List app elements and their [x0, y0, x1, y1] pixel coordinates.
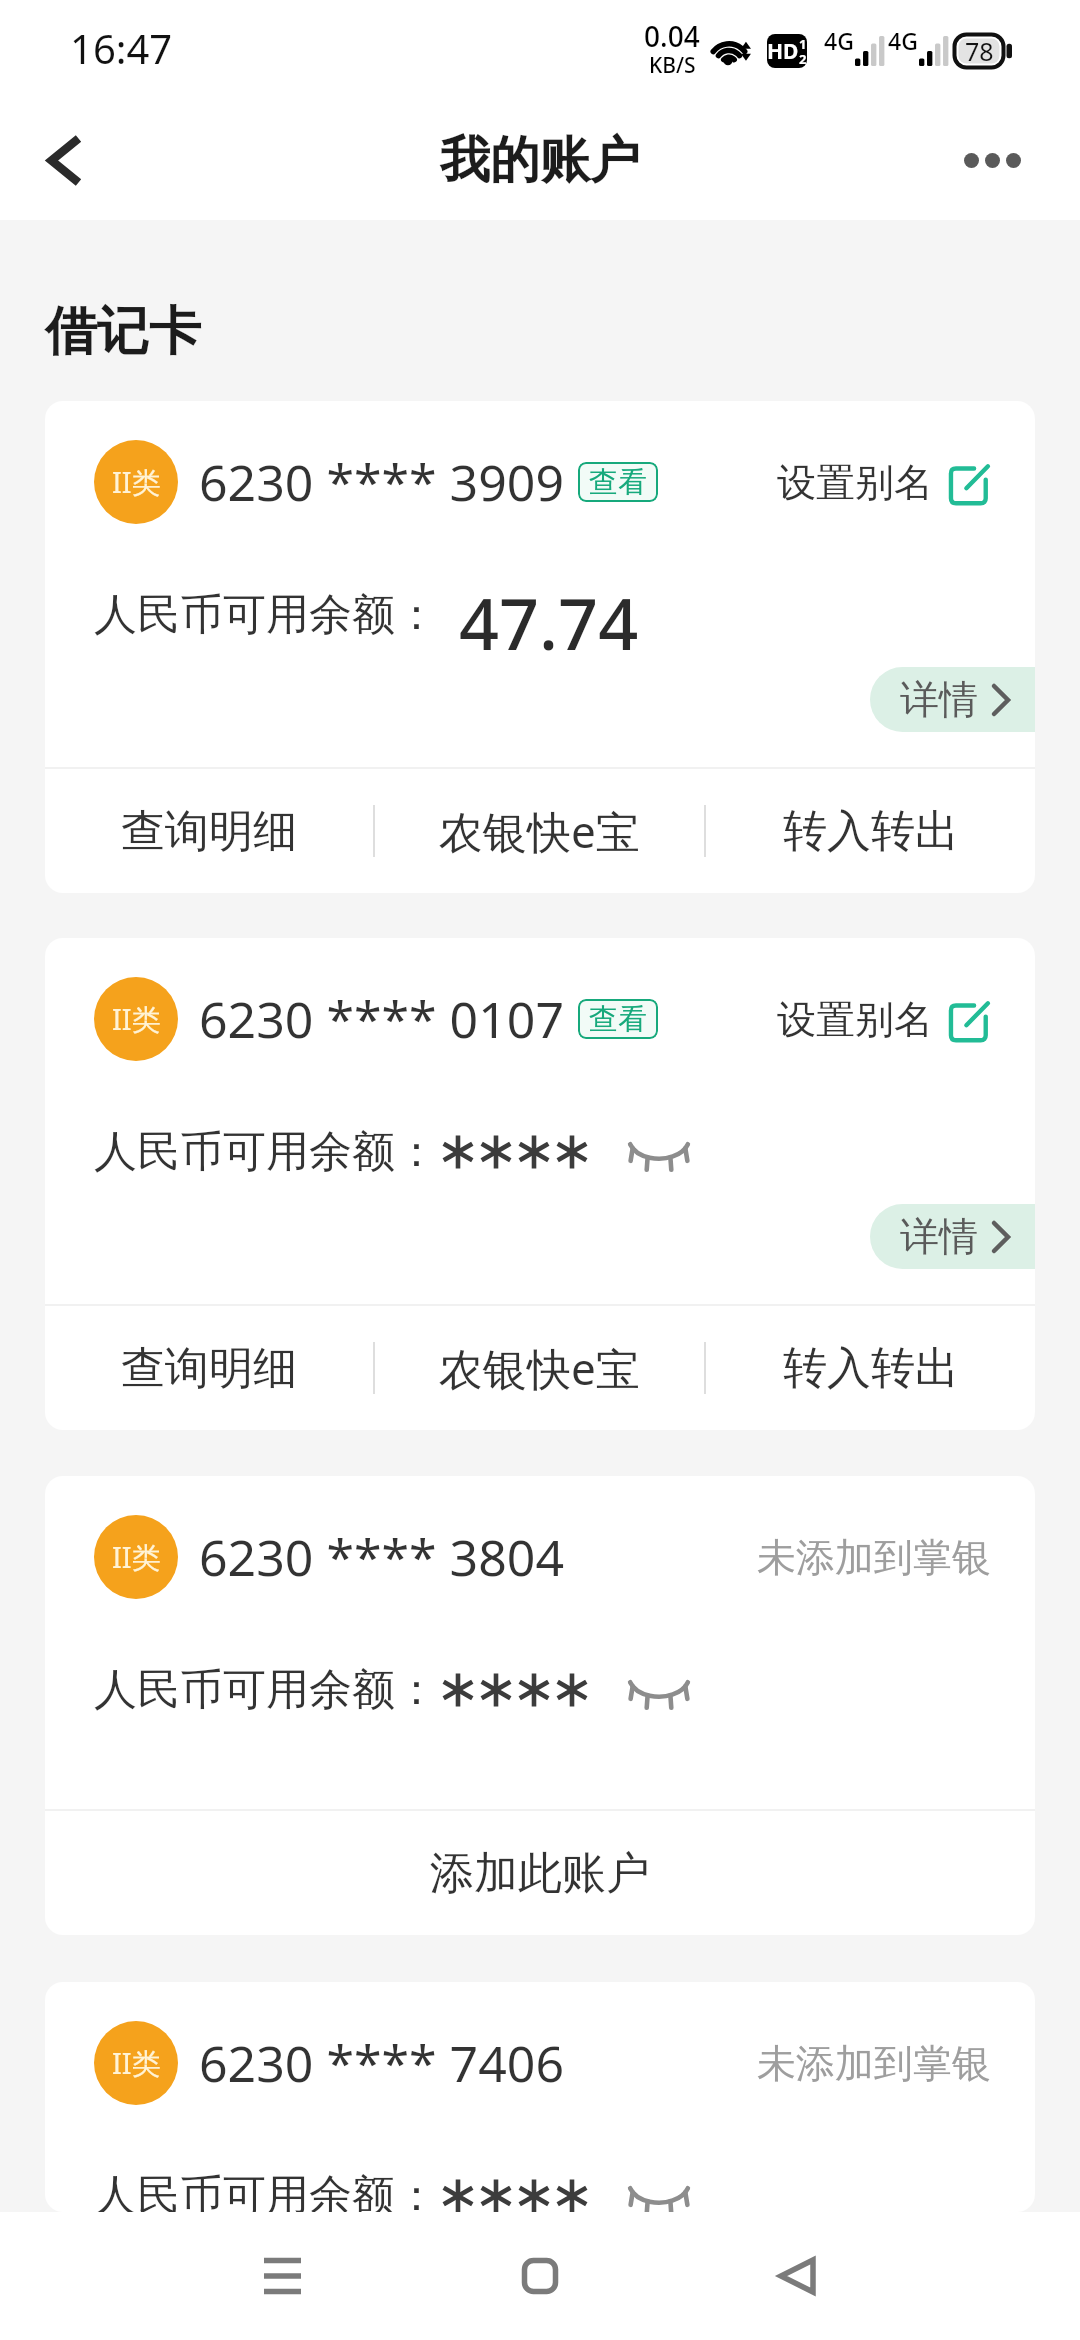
staticText: 转入转出 [783, 804, 959, 859]
staticText: 47.74 [459, 575, 639, 655]
button[interactable]: II类 [45, 1476, 1035, 1809]
button[interactable]: More options [930, 100, 1054, 220]
button[interactable]: 农银快e宝 [375, 1306, 704, 1430]
staticText: 添加此账户 [430, 1846, 650, 1901]
staticText: 6230 **** 3804 [199, 1523, 564, 1591]
button[interactable]: 农银快e宝 [375, 769, 704, 893]
staticText: 查看 [589, 464, 647, 501]
button[interactable]: Back [697, 2212, 897, 2340]
staticText: 人民币可用余额： [94, 588, 438, 642]
staticText: 查询明细 [121, 804, 297, 859]
staticText: 人民币可用余额： [94, 1125, 438, 1179]
staticText: 16:47 [70, 21, 173, 75]
button[interactable]: 转入转出 [706, 769, 1035, 893]
staticText: 2 [799, 50, 807, 66]
staticText: 6230 **** 0107 [199, 985, 564, 1053]
button[interactable]: 详情 [870, 667, 1035, 732]
button[interactable]: 查看 [578, 999, 658, 1039]
staticText: 1 [799, 35, 807, 53]
button[interactable]: 设置别名 [777, 458, 991, 507]
staticText: II类 [112, 999, 161, 1039]
button[interactable]: Recent apps [182, 2212, 382, 2340]
button[interactable]: 详情 [870, 1204, 1035, 1269]
staticText: II类 [112, 2043, 161, 2083]
staticText: 转入转出 [783, 1341, 959, 1396]
button[interactable]: 查询明细 [45, 769, 373, 893]
staticText: 未添加到掌银 [757, 2039, 991, 2088]
staticText: 农银快e宝 [439, 801, 640, 861]
button[interactable]: II类 [45, 401, 1035, 767]
staticText: 未添加到掌银 [757, 1533, 991, 1582]
button[interactable]: II类 [45, 1982, 1035, 2212]
staticText: 查看 [589, 1001, 647, 1038]
button[interactable]: Home [440, 2212, 640, 2340]
staticText: 详情 [900, 1212, 978, 1261]
button[interactable]: 查询明细 [45, 1306, 373, 1430]
staticText: 人民币可用余额： [94, 1663, 438, 1717]
staticText: II类 [112, 462, 161, 502]
staticText: 0.04 [644, 17, 700, 55]
staticText: KB/S [649, 51, 696, 80]
staticText: 人民币可用余额： [94, 2169, 438, 2212]
staticText: 设置别名 [777, 458, 933, 507]
button[interactable]: 查看 [578, 462, 658, 502]
staticText: 78 [965, 34, 994, 68]
staticText: 详情 [900, 675, 978, 724]
staticText: 设置别名 [777, 995, 933, 1044]
staticText: 查询明细 [121, 1341, 297, 1396]
staticText: 我的账户 [440, 129, 640, 192]
staticText: 4G [888, 25, 918, 56]
button[interactable]: 转入转出 [706, 1306, 1035, 1430]
staticText: 6230 **** 7406 [199, 2029, 564, 2097]
button[interactable]: Back [8, 103, 122, 217]
staticText: 借记卡 [45, 299, 201, 365]
button[interactable]: II类 [45, 938, 1035, 1304]
staticText: II类 [112, 1537, 161, 1577]
staticText: 农银快e宝 [439, 1338, 640, 1398]
button[interactable]: 添加此账户 [45, 1811, 1035, 1935]
staticText: 4G [824, 25, 854, 56]
button[interactable]: 设置别名 [777, 995, 991, 1044]
staticText: 6230 **** 3909 [199, 448, 564, 516]
staticText: HD [767, 37, 799, 66]
